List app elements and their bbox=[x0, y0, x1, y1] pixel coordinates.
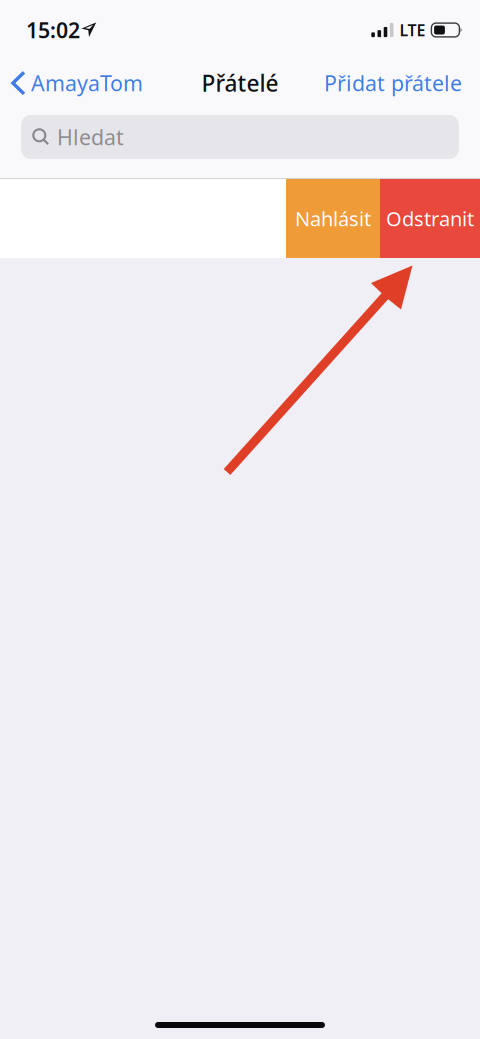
button[interactable]: Nahlásit bbox=[286, 179, 380, 258]
button[interactable]: Hledat bbox=[21, 115, 459, 159]
staticText: Odstranit bbox=[386, 205, 474, 232]
staticText: Nahlásit bbox=[295, 205, 371, 232]
button[interactable]: Odstranit bbox=[380, 179, 480, 258]
staticText: Přidat přátele bbox=[324, 69, 462, 97]
staticText: LTE bbox=[399, 19, 425, 41]
button[interactable]: Přidat přátele bbox=[324, 62, 480, 104]
staticText: AmayaTom bbox=[31, 69, 143, 97]
staticText: Hledat bbox=[57, 123, 124, 151]
staticText: 15:02 bbox=[26, 16, 80, 44]
staticText: Přátelé bbox=[201, 68, 278, 98]
button[interactable]: AmayaTom bbox=[0, 62, 143, 104]
